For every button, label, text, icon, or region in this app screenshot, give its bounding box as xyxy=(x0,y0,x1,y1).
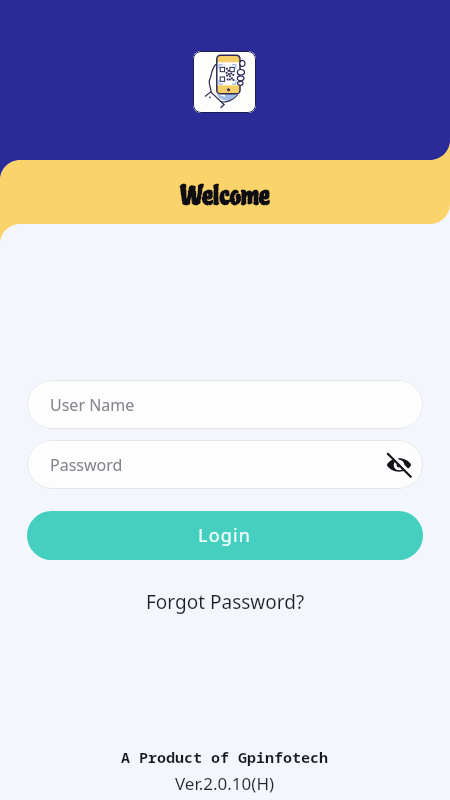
staticText: Login xyxy=(198,523,252,548)
button[interactable]: Password xyxy=(27,440,423,489)
button[interactable]: Show password xyxy=(382,448,416,482)
staticText: Ver.2.0.10(H) xyxy=(175,772,275,795)
staticText: User Name xyxy=(50,394,135,416)
staticText: Welcome xyxy=(0,180,450,213)
button[interactable]: User Name xyxy=(27,380,423,429)
staticText: Password xyxy=(50,454,123,476)
button[interactable]: Forgot Password? xyxy=(146,589,305,615)
staticText: A Product of Gpinfotech xyxy=(121,747,329,767)
button[interactable]: Login xyxy=(27,511,423,560)
